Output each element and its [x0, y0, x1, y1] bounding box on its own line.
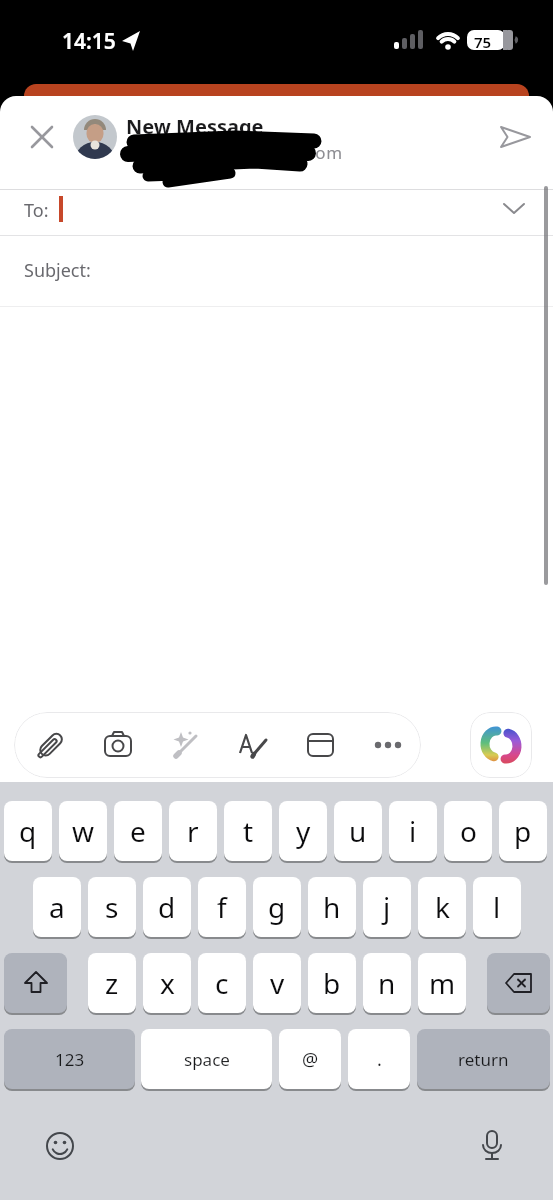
button[interactable]: u: [334, 801, 382, 863]
button[interactable]: h: [308, 877, 356, 939]
button[interactable]: [478, 1129, 506, 1163]
button[interactable]: o: [444, 801, 492, 863]
staticText: 14:15: [62, 27, 116, 56]
button[interactable]: space: [141, 1029, 272, 1091]
staticText: j: [383, 888, 391, 926]
button[interactable]: [14, 712, 81, 778]
button[interactable]: b: [308, 953, 356, 1015]
staticText: b: [323, 964, 341, 1002]
staticText: c: [215, 964, 229, 1002]
staticText: w: [72, 812, 95, 850]
button[interactable]: y: [279, 801, 327, 863]
button[interactable]: [285, 712, 353, 778]
button[interactable]: r: [169, 801, 217, 863]
button[interactable]: .: [348, 1029, 410, 1091]
staticText: y: [296, 812, 311, 850]
staticText: u: [349, 812, 367, 850]
staticText: Scott.Roots@dcbyte.com: [128, 141, 343, 164]
staticText: n: [378, 964, 396, 1002]
staticText: x: [160, 964, 175, 1002]
staticText: Subject:: [24, 258, 91, 283]
button[interactable]: [4, 953, 67, 1015]
staticText: e: [130, 812, 146, 850]
button[interactable]: f: [198, 877, 246, 939]
button[interactable]: return: [417, 1029, 550, 1091]
button[interactable]: Subject:: [0, 236, 553, 306]
staticText: a: [49, 888, 65, 926]
button[interactable]: @: [279, 1029, 341, 1091]
button[interactable]: [487, 953, 550, 1015]
staticText: m: [429, 964, 456, 1002]
button[interactable]: m: [418, 953, 466, 1015]
button[interactable]: x: [143, 953, 191, 1015]
staticText: To:: [24, 198, 49, 223]
button[interactable]: n: [363, 953, 411, 1015]
staticText: 75: [474, 32, 492, 52]
staticText: k: [435, 888, 450, 926]
staticText: z: [105, 964, 119, 1002]
staticText: space: [184, 1048, 230, 1071]
staticText: 123: [55, 1048, 85, 1071]
staticText: o: [460, 812, 477, 850]
button[interactable]: [149, 712, 217, 778]
staticText: return: [458, 1048, 509, 1071]
staticText: r: [187, 812, 199, 850]
staticText: i: [409, 812, 417, 850]
staticText: p: [514, 812, 532, 850]
button[interactable]: t: [224, 801, 272, 863]
button[interactable]: To:: [0, 190, 553, 235]
button[interactable]: w: [59, 801, 107, 863]
button[interactable]: [26, 121, 58, 153]
button[interactable]: [353, 712, 421, 778]
staticText: New Message: [126, 113, 264, 140]
button[interactable]: [217, 712, 285, 778]
button[interactable]: p: [499, 801, 547, 863]
button[interactable]: g: [253, 877, 301, 939]
staticText: @: [302, 1047, 319, 1072]
button[interactable]: a: [33, 877, 81, 939]
button[interactable]: q: [4, 801, 52, 863]
button[interactable]: [498, 120, 534, 156]
staticText: t: [243, 812, 254, 850]
button[interactable]: [470, 712, 532, 778]
button[interactable]: c: [198, 953, 246, 1015]
staticText: h: [323, 888, 341, 926]
button[interactable]: s: [88, 877, 136, 939]
button[interactable]: k: [418, 877, 466, 939]
staticText: d: [158, 888, 176, 926]
button[interactable]: e: [114, 801, 162, 863]
button[interactable]: l: [473, 877, 521, 939]
button[interactable]: [45, 1131, 75, 1161]
staticText: l: [493, 888, 501, 926]
button[interactable]: [81, 712, 149, 778]
staticText: v: [270, 964, 285, 1002]
staticText: s: [105, 888, 119, 926]
staticText: .: [377, 1047, 382, 1072]
button[interactable]: j: [363, 877, 411, 939]
button[interactable]: v: [253, 953, 301, 1015]
staticText: g: [268, 888, 286, 926]
staticText: f: [217, 888, 227, 926]
button[interactable]: z: [88, 953, 136, 1015]
button[interactable]: i: [389, 801, 437, 863]
button[interactable]: 123: [4, 1029, 135, 1091]
button[interactable]: d: [143, 877, 191, 939]
staticText: q: [19, 812, 37, 850]
